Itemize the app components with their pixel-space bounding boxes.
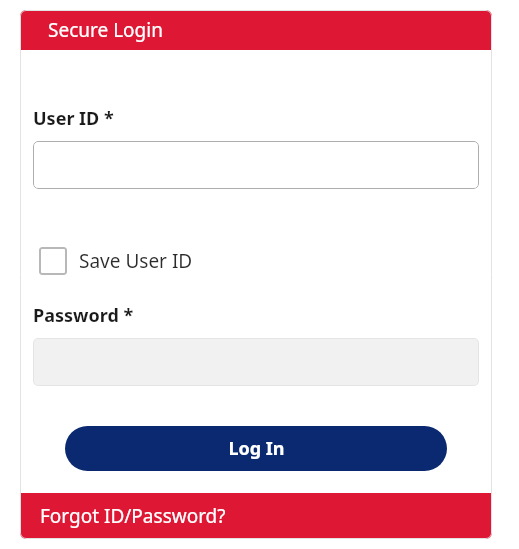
button[interactable]: Secure Login — [20, 10, 492, 50]
staticText: Password * — [33, 303, 134, 328]
button[interactable]: Log In — [65, 426, 447, 471]
staticText: User ID * — [33, 106, 114, 131]
staticText: Log In — [228, 436, 285, 461]
staticText: Forgot ID/Password? — [40, 503, 226, 529]
staticText: Secure Login — [48, 17, 163, 43]
button[interactable]: Forgot ID/Password? — [20, 493, 492, 539]
button[interactable]: Save User ID — [39, 247, 193, 275]
staticText: Save User ID — [79, 248, 193, 274]
button[interactable] — [33, 141, 479, 189]
